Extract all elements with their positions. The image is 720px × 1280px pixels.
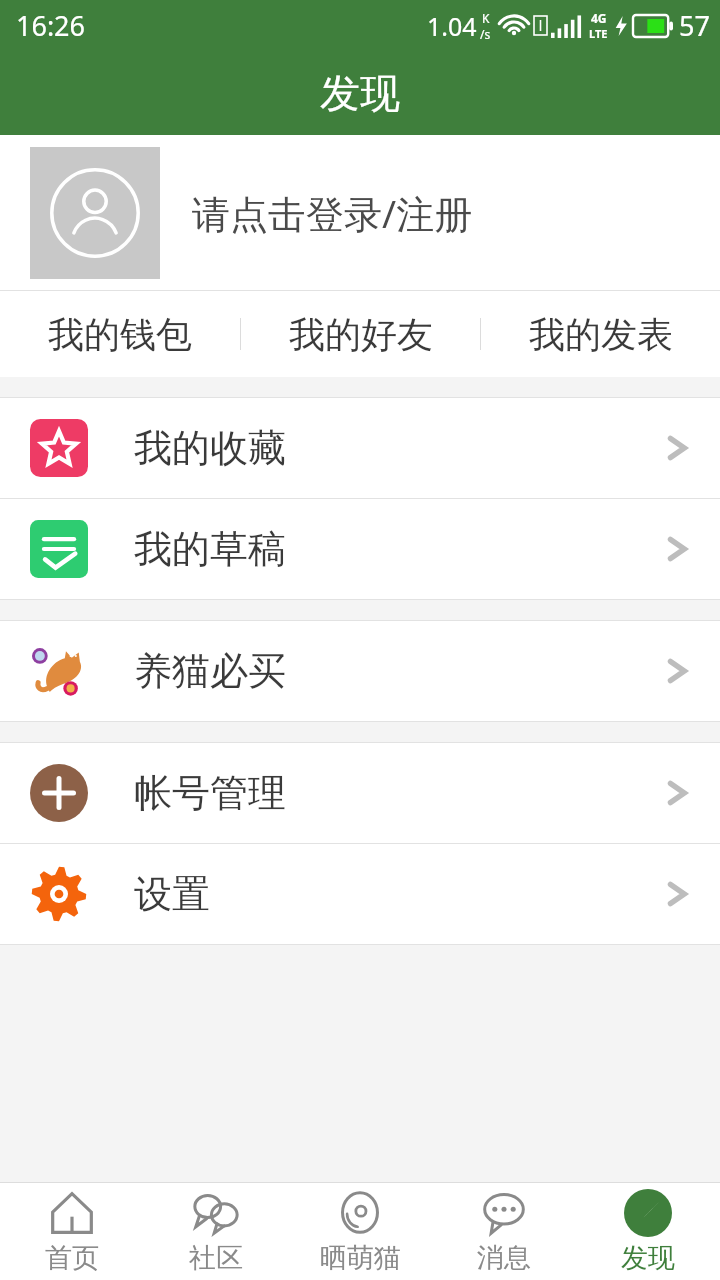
staticText: 我的草稿	[134, 525, 664, 573]
button[interactable]: 我的草稿	[0, 499, 720, 599]
button[interactable]: 首页	[0, 1183, 144, 1280]
button[interactable]: 养猫必买	[0, 621, 720, 721]
button[interactable]: 发现	[576, 1183, 720, 1280]
button[interactable]: 我的好友	[241, 291, 480, 377]
button[interactable]: 晒萌猫	[288, 1183, 432, 1280]
staticText: 晒萌猫	[320, 1241, 401, 1275]
button[interactable]: 帐号管理	[0, 743, 720, 843]
staticText: LTE	[589, 26, 608, 41]
staticText: /s	[480, 26, 491, 42]
staticText: K	[482, 10, 490, 26]
button[interactable]: 我的发表	[481, 291, 720, 377]
button[interactable]: 消息	[432, 1183, 576, 1280]
staticText: 请点击登录/注册	[192, 187, 473, 239]
staticText: 我的钱包	[48, 312, 192, 357]
staticText: 我的收藏	[134, 424, 664, 472]
staticText: 帐号管理	[134, 769, 664, 817]
staticText: 发现	[320, 68, 400, 118]
staticText: 我的发表	[529, 312, 673, 357]
staticText: 4G	[591, 10, 607, 26]
staticText: 发现	[621, 1241, 675, 1275]
button[interactable]: 我的收藏	[0, 398, 720, 498]
button[interactable]: 请点击登录/注册	[0, 135, 720, 290]
button[interactable]: 社区	[144, 1183, 288, 1280]
button[interactable]: 我的钱包	[0, 291, 240, 377]
staticText: 我的好友	[289, 312, 433, 357]
staticText: 设置	[134, 870, 664, 918]
button[interactable]: 设置	[0, 844, 720, 944]
staticText: 社区	[189, 1241, 243, 1275]
staticText: 消息	[477, 1241, 531, 1275]
staticText: 57	[679, 7, 710, 44]
staticText: 1.04	[427, 9, 477, 43]
staticText: 养猫必买	[134, 647, 664, 695]
staticText: 首页	[45, 1241, 99, 1275]
staticText: 16:26	[16, 7, 86, 44]
